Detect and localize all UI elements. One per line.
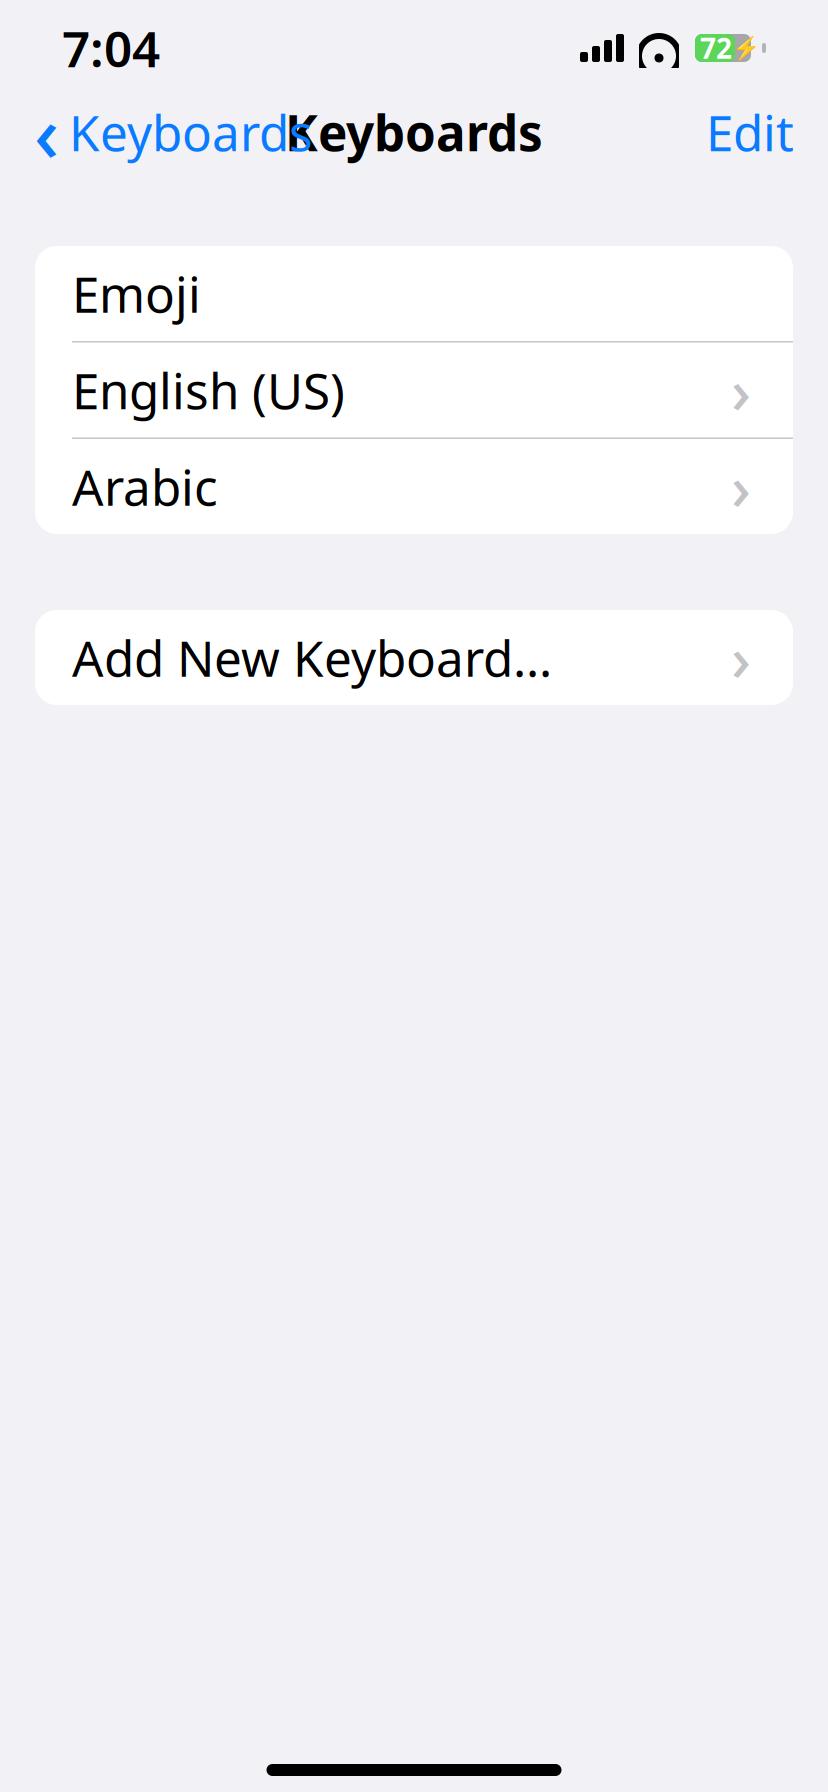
- staticText: ›: [731, 617, 751, 698]
- staticText: ›: [731, 446, 751, 527]
- button[interactable]: ‹: [24, 100, 323, 164]
- button[interactable]: Add New Keyboard...: [35, 610, 793, 705]
- staticText: Edit: [706, 99, 794, 165]
- button[interactable]: English (US): [35, 342, 793, 437]
- staticText: English (US): [72, 357, 345, 423]
- staticText: Keyboards: [69, 99, 313, 165]
- staticText: ⚡: [732, 35, 760, 61]
- staticText: 72: [700, 29, 732, 67]
- button[interactable]: Emoji: [35, 246, 793, 341]
- staticText: Arabic: [72, 454, 218, 519]
- staticText: 7:04: [62, 15, 160, 81]
- staticText: Add New Keyboard...: [72, 625, 552, 690]
- button[interactable]: Arabic: [35, 439, 793, 534]
- staticText: Keyboards: [285, 99, 543, 165]
- button[interactable]: Edit: [696, 100, 804, 164]
- staticText: ›: [731, 349, 751, 431]
- staticText: ‹: [34, 81, 59, 183]
- staticText: Emoji: [72, 261, 201, 326]
